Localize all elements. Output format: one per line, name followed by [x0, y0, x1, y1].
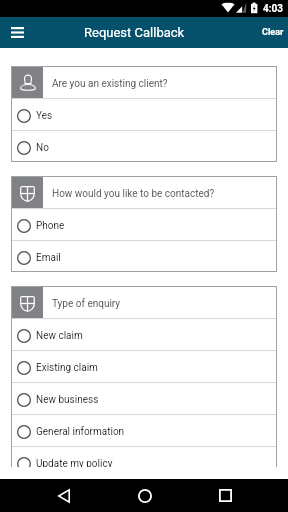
button[interactable]: Existing claim: [11, 350, 277, 382]
staticText: Phone: [36, 220, 65, 232]
staticText: General information: [36, 426, 125, 438]
staticText: New claim: [36, 330, 83, 342]
staticText: Email: [36, 252, 61, 264]
staticText: Type of enquiry: [52, 298, 121, 310]
button[interactable]: New claim: [11, 318, 277, 350]
staticText: Existing claim: [36, 362, 98, 374]
staticText: New business: [36, 394, 99, 406]
staticText: How would you like to be contacted?: [52, 188, 215, 200]
button[interactable]: Back: [49, 481, 78, 510]
button[interactable]: No: [11, 130, 277, 162]
button[interactable]: Clear: [254, 21, 288, 44]
staticText: No: [36, 142, 49, 154]
button[interactable]: Phone: [11, 208, 277, 240]
button[interactable]: Email: [11, 240, 277, 272]
button[interactable]: Home: [130, 481, 159, 510]
button[interactable]: Menu: [0, 17, 34, 48]
button[interactable]: Yes: [11, 98, 277, 130]
staticText: Yes: [36, 110, 53, 122]
staticText: Clear: [262, 27, 284, 38]
staticText: Request Callback: [84, 25, 185, 40]
button[interactable]: Update my policy: [11, 446, 277, 478]
button[interactable]: New business: [11, 382, 277, 414]
staticText: Are you an existing client?: [52, 78, 168, 90]
button[interactable]: Recent apps: [211, 481, 240, 510]
staticText: 4:03: [263, 3, 284, 15]
staticText: Update my policy: [36, 458, 113, 470]
button[interactable]: General information: [11, 414, 277, 446]
